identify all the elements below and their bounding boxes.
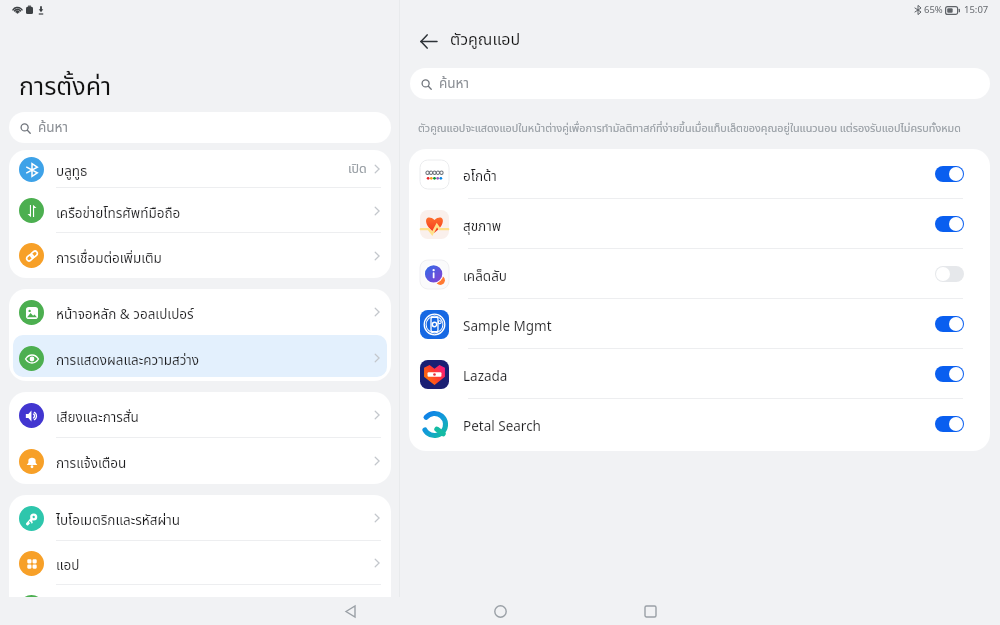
- button[interactable]: Toggle on: [935, 166, 964, 182]
- staticText: เคล็ดลับ: [463, 267, 508, 287]
- button[interactable]: เครือข่ายโทรศัพท์มือถือ: [9, 188, 391, 233]
- staticText: การแสดงผลและความสว่าง: [56, 351, 200, 371]
- staticText: Sample Mgmt: [463, 317, 552, 337]
- staticText: Lazada: [463, 367, 508, 387]
- staticText: สุขภาพ: [463, 217, 502, 237]
- staticText: ไบโอเมตริกและรหัสผ่าน: [56, 511, 180, 531]
- staticText: ตัวคูณแอป: [450, 28, 521, 52]
- button[interactable]: Toggle on: [935, 216, 964, 232]
- button[interactable]: หน้าจอหลัก & วอลเปเปอร์: [9, 289, 391, 335]
- button[interactable]: สุขภาพ: [409, 199, 990, 249]
- button[interactable]: Toggle on: [935, 316, 964, 332]
- staticText: ค้นหา: [38, 118, 68, 138]
- staticText: ตัวคูณแอปจะแสดงแอปในหน้าต่างคู่เพื่อการท…: [418, 121, 961, 137]
- button[interactable]: Toggle on: [935, 366, 964, 382]
- staticText: บลูทูธ: [56, 162, 88, 182]
- staticText: เครือข่ายโทรศัพท์มือถือ: [56, 204, 181, 224]
- staticText: อโกด้า: [463, 167, 497, 187]
- button[interactable]: Recents: [632, 597, 668, 625]
- button[interactable]: Sample Mgmt: [409, 299, 990, 349]
- button[interactable]: เสียงและการสั่น: [9, 392, 391, 438]
- button[interactable]: แอป: [9, 541, 391, 585]
- button[interactable]: ไบโอเมตริกและรหัสผ่าน: [9, 495, 391, 541]
- button[interactable]: ค้นหา: [9, 112, 391, 143]
- staticText: แอป: [56, 556, 80, 576]
- button[interactable]: Back: [332, 597, 368, 625]
- staticText: การแจ้งเตือน: [56, 454, 127, 474]
- staticText: เปิด: [348, 160, 367, 179]
- button[interactable]: Toggle off: [935, 266, 964, 282]
- button[interactable]: บลูทูธ: [9, 150, 391, 188]
- button[interactable]: การเชื่อมต่อเพิ่มเติม: [9, 233, 391, 278]
- button[interactable]: การแสดงผลและความสว่าง: [9, 335, 391, 381]
- staticText: 15:07: [964, 3, 989, 17]
- staticText: เสียงและการสั่น: [56, 408, 139, 428]
- button[interactable]: Petal Search: [409, 399, 990, 449]
- staticText: 65%: [924, 3, 943, 17]
- staticText: ค้นหา: [439, 74, 469, 94]
- button[interactable]: Toggle on: [935, 416, 964, 432]
- button[interactable]: แบตเตอรี่: [9, 585, 391, 597]
- button[interactable]: ค้นหา: [410, 68, 990, 99]
- staticText: การตั้งค่า: [19, 68, 112, 106]
- button[interactable]: Lazada: [409, 349, 990, 399]
- button[interactable]: อโกด้า: [409, 149, 990, 199]
- staticText: Petal Search: [463, 417, 541, 437]
- button[interactable]: Home: [482, 597, 518, 625]
- button[interactable]: การแจ้งเตือน: [9, 438, 391, 484]
- button[interactable]: Back: [412, 25, 444, 57]
- staticText: การเชื่อมต่อเพิ่มเติม: [56, 249, 162, 269]
- button[interactable]: เคล็ดลับ: [409, 249, 990, 299]
- staticText: หน้าจอหลัก & วอลเปเปอร์: [56, 305, 194, 325]
